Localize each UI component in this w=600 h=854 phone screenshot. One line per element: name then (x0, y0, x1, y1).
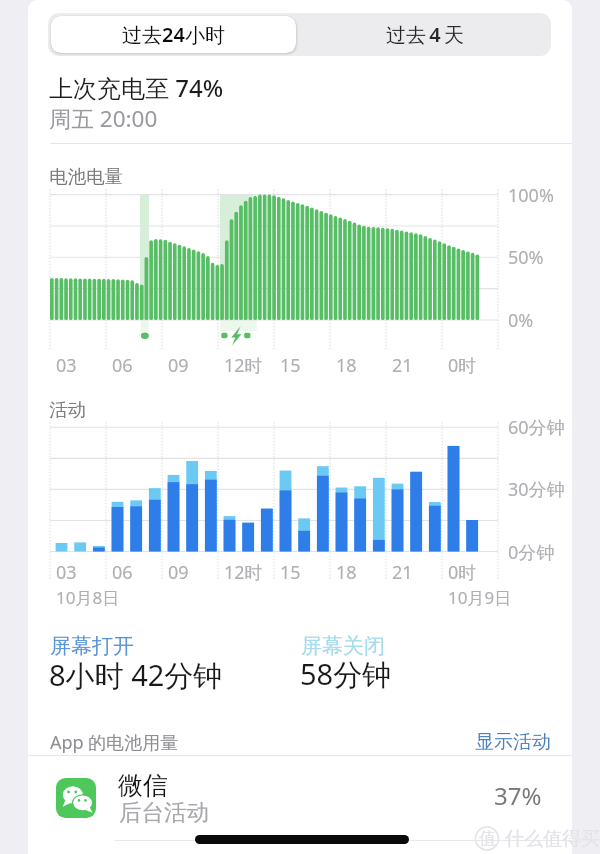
staticText: 30分钟 (508, 477, 565, 502)
staticText: 12时 (224, 353, 263, 378)
staticText: 0时 (448, 353, 477, 378)
staticText: 过去24小时 (122, 21, 225, 48)
staticText: 03 (56, 353, 77, 378)
staticText: 周五 20:00 (49, 103, 158, 134)
button[interactable]: 微信 (28, 756, 572, 840)
staticText: 09 (168, 560, 189, 585)
staticText: 活动 (49, 398, 86, 421)
button[interactable]: 过去24小时 (51, 16, 296, 53)
staticText: 09 (168, 353, 189, 378)
staticText: 屏幕打开 (50, 633, 134, 659)
staticText: 15 (280, 353, 301, 378)
staticText: 100% (508, 183, 554, 208)
staticText: 58分钟 (300, 654, 392, 694)
staticText: 0时 (448, 560, 477, 585)
staticText: 10月8日 (56, 586, 120, 609)
staticText: 21 (392, 560, 413, 585)
staticText: 后台活动 (119, 798, 209, 826)
staticText: 屏幕关闭 (301, 633, 385, 659)
staticText: 50% (508, 245, 544, 270)
staticText: 03 (56, 560, 77, 585)
staticText: 过去 4 天 (386, 21, 465, 48)
staticText: 电池电量 (49, 165, 123, 188)
staticText: 21 (392, 353, 413, 378)
staticText: 显示活动 (475, 730, 551, 754)
staticText: 上次充电至 74% (49, 71, 224, 104)
staticText: 什么值得买 (505, 827, 600, 851)
staticText: 微信 (118, 770, 168, 801)
staticText: 06 (112, 560, 133, 585)
staticText: 0分钟 (508, 540, 555, 565)
staticText: 37% (494, 779, 542, 812)
staticText: 15 (280, 560, 301, 585)
button[interactable]: 过去 4 天 (299, 13, 551, 56)
staticText: App 的电池用量 (50, 730, 179, 755)
staticText: 18 (336, 353, 357, 378)
staticText: 10月9日 (448, 586, 512, 609)
staticText: 值 (479, 828, 496, 849)
button[interactable]: 显示活动 (475, 730, 551, 754)
staticText: 18 (336, 560, 357, 585)
staticText: 8小时 42分钟 (49, 655, 223, 695)
staticText: 0% (508, 308, 534, 333)
staticText: 12时 (224, 560, 263, 585)
staticText: 60分钟 (508, 415, 565, 440)
staticText: 06 (112, 353, 133, 378)
